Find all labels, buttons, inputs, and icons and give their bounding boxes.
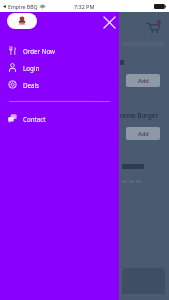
button[interactable]: Empire BBQ logo [7, 13, 37, 29]
button[interactable]: Order Now [0, 42, 119, 59]
button[interactable]: Login [0, 59, 119, 76]
button[interactable]: Add [126, 74, 160, 87]
staticText: reme Burger [120, 111, 159, 119]
button[interactable]: Close menu [100, 13, 118, 31]
button[interactable]: Cart [144, 18, 162, 36]
staticText: Deals [23, 81, 40, 89]
staticText: Empire BBQ [8, 3, 38, 10]
staticText: Add [138, 130, 149, 138]
staticText: Add [138, 77, 149, 85]
staticText: Order Now [23, 47, 55, 55]
staticText: Login [23, 64, 40, 72]
button[interactable]: Contact [0, 110, 119, 127]
staticText: Contact [23, 115, 46, 123]
button[interactable]: Add [126, 127, 160, 140]
button[interactable]: Deals [0, 76, 119, 93]
staticText: 7:32 PM [74, 3, 95, 10]
